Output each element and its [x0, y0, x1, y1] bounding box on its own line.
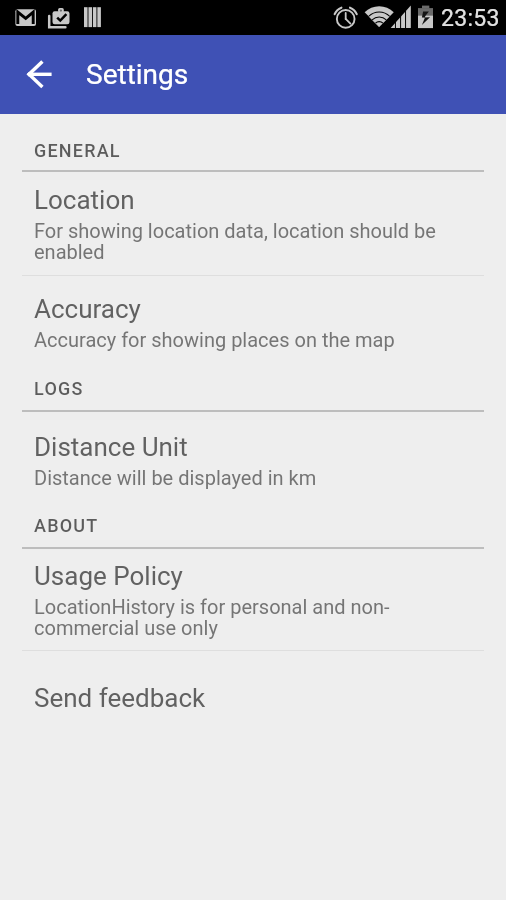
staticText: Location: [34, 185, 135, 215]
staticText: Usage Policy: [34, 561, 183, 591]
staticText: Accuracy for showing places on the map: [34, 328, 395, 351]
button[interactable]: Location: [0, 185, 506, 264]
button[interactable]: Back: [0, 35, 86, 114]
staticText: LocationHistory is for personal and non-…: [34, 595, 476, 640]
button[interactable]: Accuracy: [0, 294, 506, 351]
button[interactable]: Send feedback: [0, 683, 506, 713]
staticText: ABOUT: [34, 515, 99, 536]
staticText: GENERAL: [34, 140, 121, 161]
button[interactable]: Distance Unit: [0, 432, 506, 489]
staticText: Distance Unit: [34, 432, 188, 462]
staticText: 23:53: [441, 5, 500, 32]
staticText: Accuracy: [34, 294, 141, 324]
staticText: LOGS: [34, 378, 84, 399]
button[interactable]: Usage Policy: [0, 561, 506, 640]
staticText: Send feedback: [34, 683, 206, 713]
staticText: Settings: [86, 58, 189, 91]
staticText: For showing location data, location shou…: [34, 219, 476, 264]
staticText: Distance will be displayed in km: [34, 466, 317, 489]
